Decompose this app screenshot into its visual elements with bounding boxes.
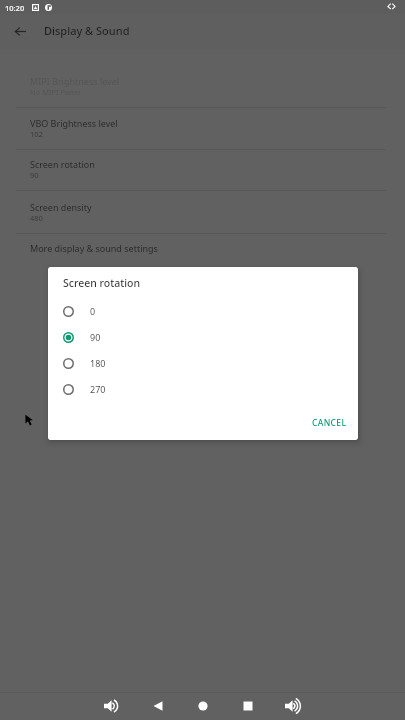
button[interactable]: Volume down: [98, 692, 126, 720]
button[interactable]: Home: [189, 692, 217, 720]
button[interactable]: More display & sound settings: [0, 234, 405, 275]
staticText: 270: [90, 383, 106, 395]
staticText: 90: [90, 331, 101, 343]
button[interactable]: Screen rotation: [0, 150, 405, 190]
button[interactable]: Screen density: [0, 191, 405, 233]
staticText: 102: [30, 129, 43, 139]
staticText: 10:20: [5, 3, 25, 13]
staticText: Screen rotation: [63, 276, 141, 290]
button[interactable]: 0: [48, 298, 358, 324]
staticText: 0: [90, 305, 96, 317]
staticText: Screen rotation: [30, 158, 95, 170]
button[interactable]: Recents: [234, 692, 262, 720]
staticText: VBO Brightness level: [30, 117, 118, 129]
staticText: More display & sound settings: [30, 242, 158, 254]
button[interactable]: Volume up: [279, 692, 307, 720]
staticText: MIPI Brightness level: [30, 75, 120, 87]
staticText: CANCEL: [312, 417, 347, 429]
staticText: Screen density: [30, 201, 92, 213]
staticText: 480: [30, 213, 43, 223]
button[interactable]: CANCEL: [305, 411, 353, 435]
staticText: Display & Sound: [44, 23, 130, 38]
staticText: 90: [30, 170, 39, 180]
button[interactable]: VBO Brightness level: [0, 108, 405, 149]
button[interactable]: Back: [8, 19, 33, 44]
button[interactable]: Back: [144, 692, 172, 720]
button[interactable]: 90: [48, 324, 358, 350]
button[interactable]: 270: [48, 376, 358, 402]
staticText: 180: [90, 357, 106, 369]
button[interactable]: 180: [48, 350, 358, 376]
staticText: No MIPI Panel: [30, 87, 81, 97]
